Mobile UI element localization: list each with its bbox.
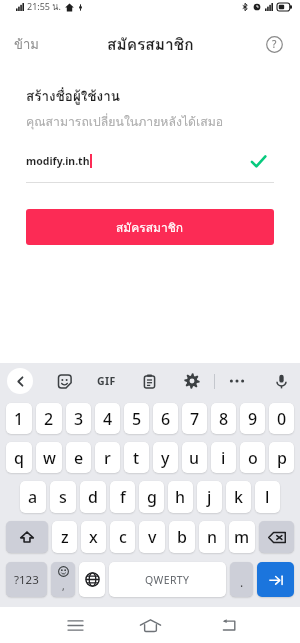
button[interactable]: g bbox=[139, 481, 164, 513]
button[interactable]: Clipboard bbox=[137, 369, 161, 393]
staticText: , bbox=[62, 579, 65, 593]
staticText: . bbox=[240, 574, 244, 590]
button[interactable]: Back bbox=[7, 368, 33, 394]
staticText: สมัครสมาชิก bbox=[107, 32, 194, 57]
staticText: c bbox=[119, 526, 127, 548]
button[interactable]: 6 bbox=[153, 403, 178, 434]
button[interactable]: Switch language bbox=[79, 562, 105, 597]
button[interactable]: 3 bbox=[66, 403, 91, 434]
staticText: ?123 bbox=[14, 572, 39, 588]
button[interactable]: l bbox=[255, 481, 280, 513]
button[interactable]: Shift bbox=[6, 521, 48, 553]
button[interactable]: . bbox=[230, 562, 253, 597]
staticText: 6 bbox=[161, 408, 171, 430]
button[interactable]: d bbox=[80, 481, 106, 513]
staticText: QWERTY bbox=[145, 573, 190, 587]
button[interactable]: 0 bbox=[269, 403, 294, 434]
button[interactable]: 7 bbox=[182, 403, 207, 434]
button[interactable]: Home bbox=[132, 607, 168, 643]
button[interactable]: p bbox=[269, 442, 294, 473]
button[interactable]: i bbox=[211, 442, 236, 473]
staticText: q bbox=[14, 447, 24, 469]
staticText: s bbox=[59, 486, 67, 508]
staticText: z bbox=[61, 526, 69, 548]
staticText: u bbox=[189, 447, 200, 469]
button[interactable]: Voice input bbox=[269, 369, 293, 393]
staticText: e bbox=[74, 447, 84, 469]
staticText: 21:55 น. bbox=[27, 0, 61, 14]
button[interactable]: Settings bbox=[180, 369, 204, 393]
staticText: l bbox=[265, 486, 270, 508]
staticText: t bbox=[133, 447, 140, 469]
staticText: o bbox=[248, 447, 258, 469]
button[interactable]: Stickers bbox=[52, 369, 76, 393]
staticText: k bbox=[234, 486, 243, 508]
staticText: f bbox=[120, 486, 126, 508]
button[interactable]: e bbox=[66, 442, 91, 473]
staticText: i bbox=[221, 447, 226, 469]
button[interactable]: c bbox=[110, 521, 135, 553]
button[interactable]: 8 bbox=[211, 403, 236, 434]
staticText: w bbox=[43, 447, 56, 469]
button[interactable]: b bbox=[169, 521, 195, 553]
staticText: n bbox=[207, 526, 218, 548]
button[interactable]: 5 bbox=[124, 403, 149, 434]
button[interactable]: o bbox=[240, 442, 265, 473]
button[interactable]: a bbox=[20, 481, 46, 513]
staticText: r bbox=[104, 447, 111, 469]
button[interactable]: ?123 bbox=[6, 562, 47, 597]
staticText: a bbox=[28, 486, 38, 508]
button[interactable]: k bbox=[226, 481, 251, 513]
button[interactable]: ข้าม bbox=[8, 26, 45, 63]
staticText: ข้าม bbox=[14, 34, 39, 55]
button[interactable]: สมัครสมาชิก bbox=[26, 209, 274, 245]
button[interactable]: z bbox=[52, 521, 77, 553]
staticText: 3 bbox=[74, 408, 84, 430]
staticText: y bbox=[161, 447, 170, 469]
staticText: 5 bbox=[132, 408, 142, 430]
button[interactable]: More options bbox=[225, 369, 249, 393]
button[interactable]: r bbox=[95, 442, 120, 473]
button[interactable]: w bbox=[36, 442, 62, 473]
button[interactable]: Back bbox=[210, 607, 246, 643]
button[interactable]: Emoji bbox=[51, 562, 75, 597]
button[interactable]: t bbox=[124, 442, 149, 473]
staticText: 1 bbox=[14, 408, 24, 430]
staticText: h bbox=[175, 486, 186, 508]
button[interactable]: m bbox=[229, 521, 255, 553]
staticText: d bbox=[88, 486, 98, 508]
button[interactable]: 4 bbox=[95, 403, 120, 434]
staticText: 2 bbox=[44, 408, 54, 430]
staticText: p bbox=[277, 447, 287, 469]
button[interactable]: 2 bbox=[36, 403, 62, 434]
button[interactable]: Recent apps bbox=[57, 607, 93, 643]
button[interactable]: Help bbox=[264, 34, 284, 54]
staticText: g bbox=[147, 486, 157, 508]
button[interactable]: x bbox=[81, 521, 106, 553]
button[interactable]: 9 bbox=[240, 403, 265, 434]
button[interactable]: GIF bbox=[95, 372, 118, 390]
staticText: m bbox=[234, 526, 250, 548]
button[interactable]: s bbox=[50, 481, 76, 513]
button[interactable]: n bbox=[199, 521, 225, 553]
button[interactable]: h bbox=[168, 481, 193, 513]
button[interactable]: QWERTY bbox=[109, 562, 226, 597]
button[interactable]: Enter bbox=[257, 562, 294, 597]
button[interactable]: f bbox=[110, 481, 135, 513]
staticText: คุณสามารถเปลี่ยนในภายหลังได้เสมอ bbox=[26, 112, 224, 131]
button[interactable]: v bbox=[139, 521, 165, 553]
staticText: สมัครสมาชิก bbox=[116, 218, 184, 237]
staticText: 4 bbox=[103, 408, 113, 430]
staticText: 8 bbox=[219, 408, 229, 430]
button[interactable]: q bbox=[6, 442, 32, 473]
staticText: b bbox=[177, 526, 187, 548]
button[interactable]: y bbox=[153, 442, 178, 473]
staticText: ? bbox=[272, 37, 277, 51]
staticText: GIF bbox=[97, 374, 116, 388]
staticText: 0 bbox=[277, 408, 287, 430]
staticText: 7 bbox=[190, 408, 200, 430]
button[interactable]: u bbox=[182, 442, 207, 473]
button[interactable]: j bbox=[197, 481, 222, 513]
button[interactable]: 1 bbox=[6, 403, 32, 434]
button[interactable]: Backspace bbox=[259, 521, 294, 553]
